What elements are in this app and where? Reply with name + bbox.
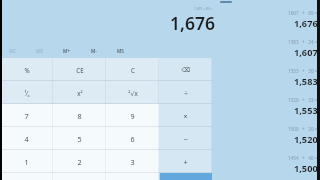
button[interactable]: 3 [106,150,159,173]
staticText: ÷ [184,89,188,97]
staticText: 3 [130,157,135,167]
staticText: − [183,134,188,144]
button[interactable]: % [0,58,53,81]
button[interactable]: 8 [53,104,106,127]
staticText: C [131,66,135,74]
button[interactable]: 4 [0,127,53,150]
button[interactable]: 1520 + 33 = [240,97,318,126]
staticText: % [24,66,30,74]
button[interactable]: 1 [0,150,53,173]
staticText: x² [77,89,83,97]
button[interactable]: ÷ [159,81,212,104]
staticText: + [183,157,188,167]
staticText: 1454 + 46 = [288,155,318,161]
staticText: 1500 + 20 = [288,126,318,132]
button[interactable]: 2 [53,150,106,173]
button[interactable]: 7 [0,104,53,127]
staticText: 1,583 [294,75,318,88]
button[interactable]: C [106,58,159,81]
staticText: 8 [77,111,82,121]
button[interactable]: 9 [106,104,159,127]
staticText: × [183,111,188,121]
staticText: 5 [77,134,82,144]
staticText: MC [9,48,17,54]
staticText: 1,676 [170,11,215,35]
staticText: 1,676 [294,17,318,30]
staticText: ²√x [128,89,138,97]
button[interactable]: x² [53,81,106,104]
staticText: 6 [130,134,135,144]
button[interactable]: + [159,150,212,173]
staticText: 4 [24,134,29,144]
staticText: 2 [77,157,82,167]
button[interactable]: Backspace [159,58,212,81]
button[interactable]: 6 [106,127,159,150]
button[interactable]: 1454 + 46 = [240,155,318,180]
staticText: 1,607 [294,46,318,59]
staticText: 1553 + 30 = [288,68,318,74]
staticText: ¹⁄ₓ [24,89,30,97]
staticText: 1583 + 24 = [288,39,318,45]
button[interactable]: ²√x [106,81,159,104]
button[interactable]: − [159,127,212,150]
button[interactable]: MS [107,44,134,57]
button[interactable]: 1500 + 20 = [240,126,318,155]
button[interactable]: 1553 + 30 = [240,68,318,97]
button[interactable]: Expand display [220,1,232,3]
staticText: CE [76,66,84,74]
button[interactable]: 5 [53,127,106,150]
button[interactable]: 1583 + 24 = [240,39,318,68]
button[interactable]: MC [0,44,26,57]
button[interactable]: × [159,104,212,127]
staticText: 7 [24,111,29,121]
staticText: MR [36,48,44,54]
staticText: M- [91,48,97,54]
button[interactable]: Plus minus [0,173,53,180]
button[interactable]: M+ [53,44,80,57]
button[interactable]: M- [80,44,107,57]
staticText: 1607 + 69 = [288,10,318,16]
button[interactable]: CE [53,58,106,81]
staticText: MS [117,48,124,54]
staticText: 1 [24,157,29,167]
button[interactable]: MR [26,44,53,57]
staticText: 1520 + 33 = [288,97,318,103]
staticText: 1,553 [294,104,318,117]
button[interactable]: ¹⁄ₓ [0,81,53,104]
staticText: 9 [130,111,135,121]
staticText: M+ [63,48,70,54]
staticText: 1,500 [294,162,318,175]
staticText: ⌫ [181,66,190,73]
staticText: 1,607 + 69 = [194,7,212,11]
staticText: 1,520 [294,133,318,146]
button[interactable]: 1607 + 69 = [240,10,318,39]
